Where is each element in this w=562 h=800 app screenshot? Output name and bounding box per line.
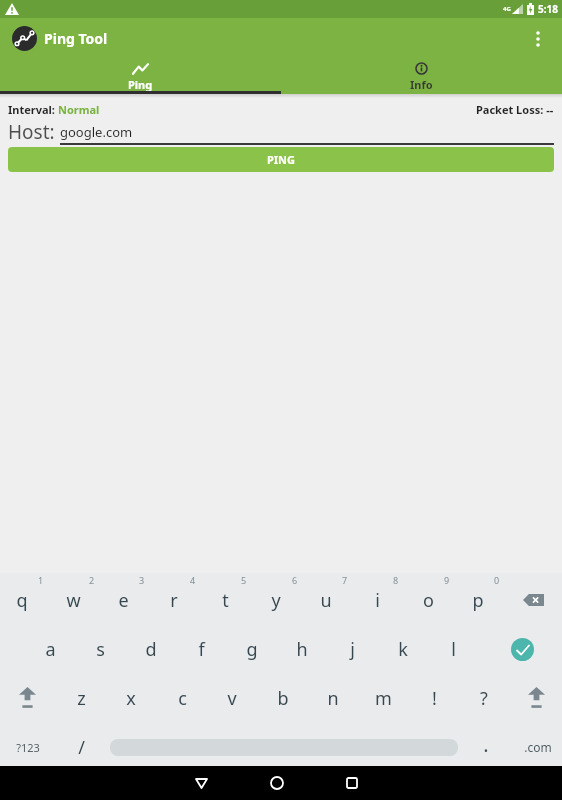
staticText: 0: [494, 574, 500, 586]
staticText: c: [178, 686, 187, 711]
staticText: p: [472, 588, 484, 613]
staticText: 4G: [503, 5, 511, 13]
button[interactable]: Ping: [0, 59, 281, 94]
staticText: v: [227, 686, 237, 711]
button[interactable]: v: [209, 678, 255, 718]
button[interactable]: n: [310, 678, 356, 718]
button[interactable]: [183, 766, 219, 800]
staticText: 3: [139, 574, 145, 586]
button[interactable]: t: [202, 580, 248, 620]
staticText: Info: [410, 77, 433, 92]
button[interactable]: p: [455, 580, 501, 620]
staticText: google.com: [60, 123, 133, 141]
staticText: Packet Loss: --: [476, 102, 554, 117]
button[interactable]: e: [100, 580, 146, 620]
button[interactable]: [334, 766, 370, 800]
button[interactable]: ?123: [5, 727, 51, 767]
staticText: b: [277, 686, 289, 711]
staticText: Host:: [8, 119, 55, 145]
staticText: a: [45, 637, 56, 662]
staticText: m: [375, 686, 392, 711]
button[interactable]: s: [77, 629, 123, 669]
staticText: /: [78, 735, 85, 760]
button[interactable]: i: [354, 580, 400, 620]
staticText: l: [451, 637, 456, 662]
staticText: z: [77, 686, 86, 711]
staticText: Ping Tool: [44, 29, 108, 48]
button[interactable]: .: [463, 724, 509, 764]
button[interactable]: ?: [461, 678, 507, 718]
staticText: r: [170, 588, 178, 613]
button[interactable]: [259, 766, 295, 800]
button[interactable]: b: [260, 678, 306, 718]
button[interactable]: u: [303, 580, 349, 620]
button[interactable]: h: [279, 629, 325, 669]
staticText: Interval:: [8, 102, 58, 117]
staticText: 6: [292, 574, 298, 586]
staticText: Normal: [58, 102, 100, 117]
button[interactable]: Host:: [8, 119, 554, 145]
staticText: 9: [444, 574, 450, 586]
button[interactable]: [4, 676, 50, 720]
staticText: e: [118, 588, 129, 613]
button[interactable]: Info: [281, 59, 562, 94]
button[interactable]: [513, 676, 559, 720]
button[interactable]: [508, 580, 558, 620]
staticText: f: [198, 637, 205, 662]
staticText: s: [96, 637, 105, 662]
button[interactable]: [500, 627, 544, 671]
staticText: 8: [393, 574, 399, 586]
staticText: o: [423, 588, 434, 613]
staticText: 2: [89, 574, 95, 586]
staticText: g: [246, 637, 258, 662]
button[interactable]: m: [360, 678, 406, 718]
button[interactable]: j: [329, 629, 375, 669]
staticText: d: [145, 637, 157, 662]
button[interactable]: f: [178, 629, 224, 669]
button[interactable]: y: [253, 580, 299, 620]
button[interactable]: [522, 18, 554, 59]
staticText: PING: [267, 152, 296, 167]
staticText: n: [327, 686, 339, 711]
button[interactable]: x: [108, 678, 154, 718]
button[interactable]: /: [58, 727, 104, 767]
staticText: 5: [241, 574, 247, 586]
staticText: w: [66, 588, 81, 613]
staticText: ?: [480, 686, 488, 711]
button[interactable]: q: [0, 580, 45, 620]
button[interactable]: a: [27, 629, 73, 669]
button[interactable]: k: [380, 629, 426, 669]
button[interactable]: .com: [515, 727, 561, 767]
staticText: ?123: [16, 740, 40, 755]
staticText: 1: [38, 574, 44, 586]
button[interactable]: !: [411, 678, 457, 718]
staticText: Ping: [128, 77, 153, 92]
staticText: h: [296, 637, 308, 662]
staticText: i: [375, 588, 380, 613]
staticText: !: [432, 686, 437, 711]
button[interactable]: c: [159, 678, 205, 718]
button[interactable]: w: [50, 580, 96, 620]
button[interactable]: r: [151, 580, 197, 620]
staticText: 5:18: [538, 2, 558, 16]
staticText: .com: [524, 739, 552, 755]
staticText: j: [350, 637, 355, 662]
button[interactable]: d: [128, 629, 174, 669]
staticText: q: [16, 588, 28, 613]
button[interactable]: o: [405, 580, 451, 620]
staticText: x: [126, 686, 136, 711]
staticText: u: [320, 588, 332, 613]
staticText: y: [271, 588, 281, 613]
staticText: 4: [190, 574, 196, 586]
button[interactable]: g: [229, 629, 275, 669]
button[interactable]: PING: [8, 147, 554, 172]
staticText: .: [483, 731, 489, 758]
button[interactable]: l: [430, 629, 476, 669]
staticText: 7: [342, 574, 348, 586]
staticText: k: [398, 637, 408, 662]
button[interactable]: z: [58, 678, 104, 718]
staticText: t: [222, 588, 229, 613]
